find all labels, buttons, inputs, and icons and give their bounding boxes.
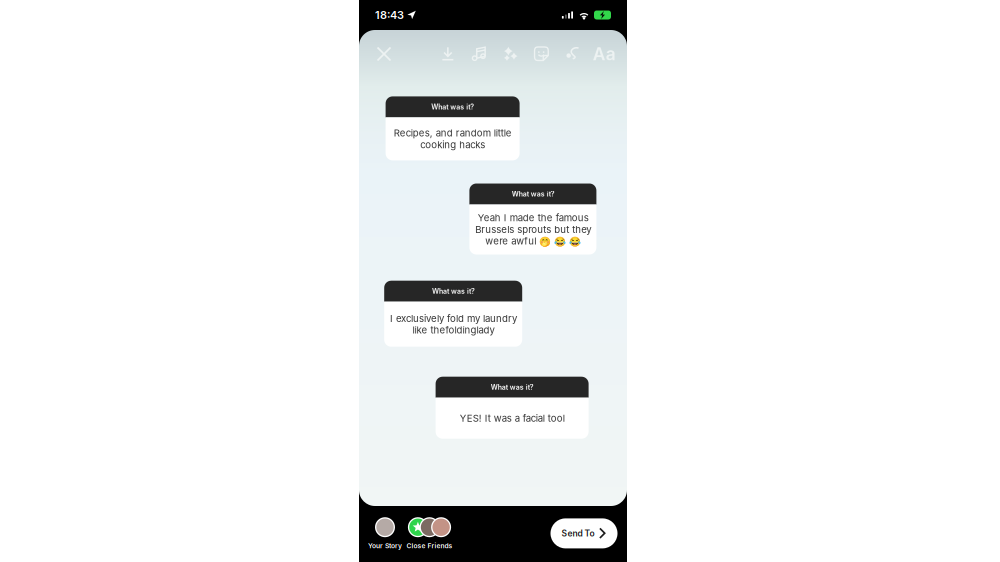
button[interactable]: Your Story [363,516,407,550]
staticText: Aa [593,43,616,64]
button[interactable]: What was it? [436,377,589,439]
staticText: What was it? [491,383,534,391]
staticText: Yeah I made the famous Brussels sprouts … [475,212,591,247]
staticText: What was it? [432,287,475,295]
staticText: What was it? [431,103,474,111]
staticText: I exclusively fold my laundry like thefo… [390,313,517,336]
button[interactable]: What was it? [386,96,520,160]
button[interactable]: Close Friends [404,516,454,550]
staticText: 18:43 [375,8,404,22]
button[interactable]: Close [368,39,400,69]
staticText: Send To [561,528,594,538]
staticText: Close Friends [406,542,452,550]
button[interactable]: Save [432,39,463,69]
button[interactable]: Text [589,39,620,69]
button[interactable]: Music [463,39,495,69]
staticText: YES! It was a facial tool [460,412,565,424]
button[interactable]: What was it? [384,281,522,347]
staticText: What was it? [511,190,554,198]
staticText: Recipes, and random little cooking hacks [394,127,512,150]
button[interactable]: Stickers [526,39,557,69]
button[interactable]: What was it? [469,183,596,254]
staticText: Your Story [368,542,402,550]
button[interactable]: Draw [557,39,589,69]
button[interactable]: Effects [495,39,526,69]
button[interactable]: Send To [550,518,617,548]
